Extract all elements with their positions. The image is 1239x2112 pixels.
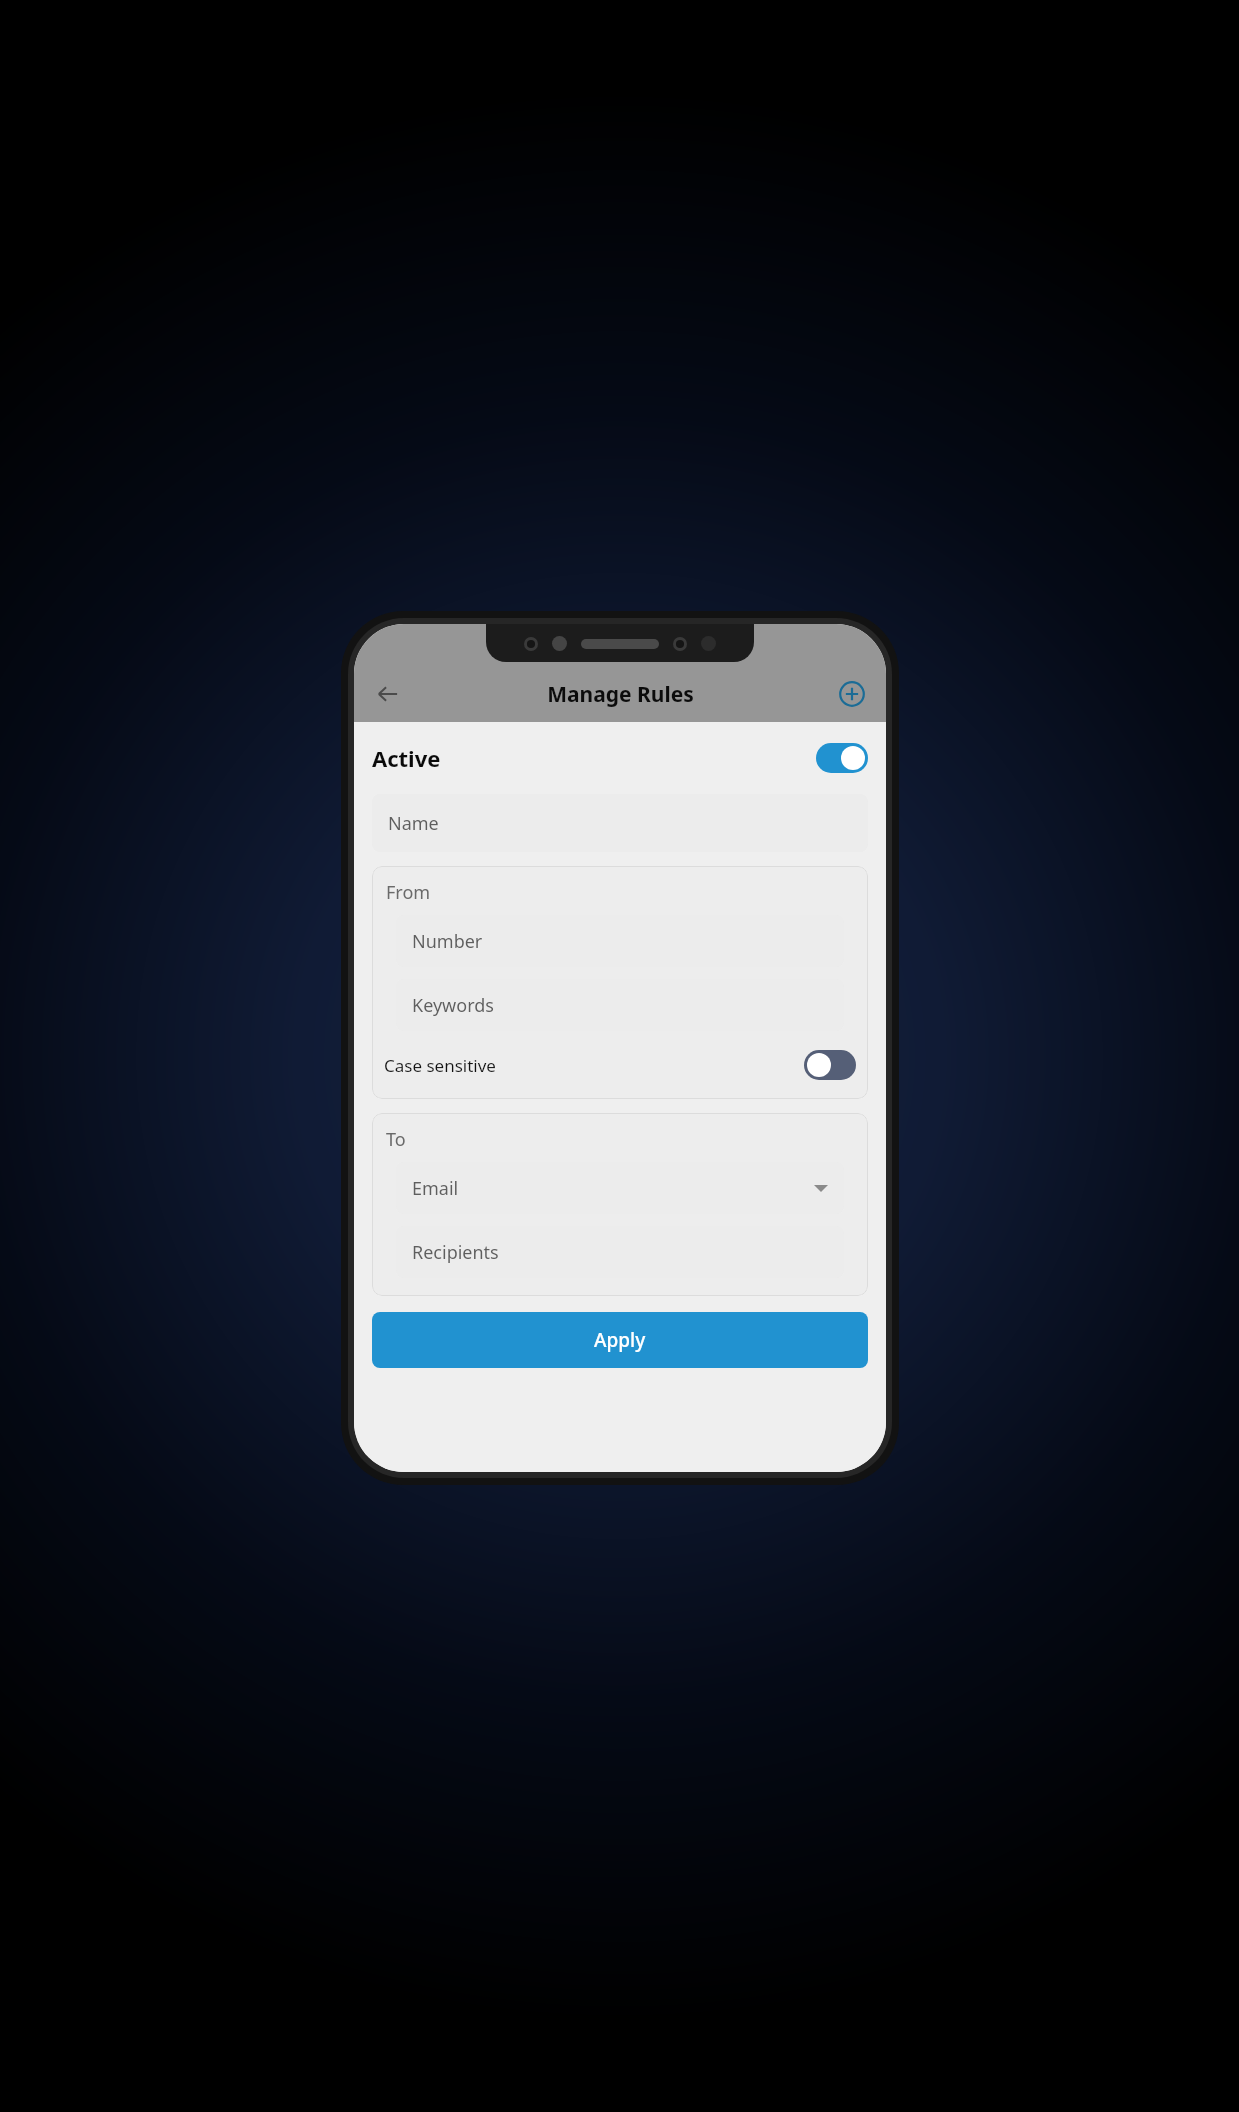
button[interactable]: On — [816, 743, 868, 773]
button[interactable]: Email — [396, 1162, 844, 1214]
button[interactable]: Recipients — [396, 1226, 844, 1278]
button[interactable]: Keywords — [396, 979, 844, 1031]
button[interactable]: Name — [372, 794, 868, 852]
button[interactable]: Apply — [372, 1312, 868, 1368]
staticText: Keywords — [412, 993, 494, 1018]
staticText: Number — [412, 929, 483, 954]
staticText: Apply — [594, 1327, 646, 1353]
button[interactable]: Number — [396, 915, 844, 967]
staticText: From — [386, 880, 431, 905]
button[interactable]: Add rule — [828, 670, 876, 718]
staticText: Email — [412, 1176, 459, 1201]
button[interactable]: Active — [372, 732, 868, 784]
staticText: Case sensitive — [384, 1054, 496, 1077]
staticText: Name — [388, 811, 439, 836]
button[interactable]: Back — [364, 670, 412, 718]
staticText: Recipients — [412, 1240, 499, 1265]
staticText: Active — [372, 743, 441, 773]
staticText: Manage Rules — [547, 680, 694, 709]
button[interactable]: Off — [804, 1050, 856, 1080]
staticText: To — [386, 1127, 406, 1152]
button[interactable]: Case sensitive — [384, 1045, 856, 1085]
